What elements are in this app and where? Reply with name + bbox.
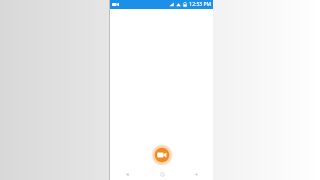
staticText: 12:53 PM [189,1,211,8]
button[interactable]: Back [110,168,145,180]
button[interactable]: Home [145,168,179,180]
button[interactable]: Record [151,144,173,166]
button[interactable]: Recents [179,168,213,180]
